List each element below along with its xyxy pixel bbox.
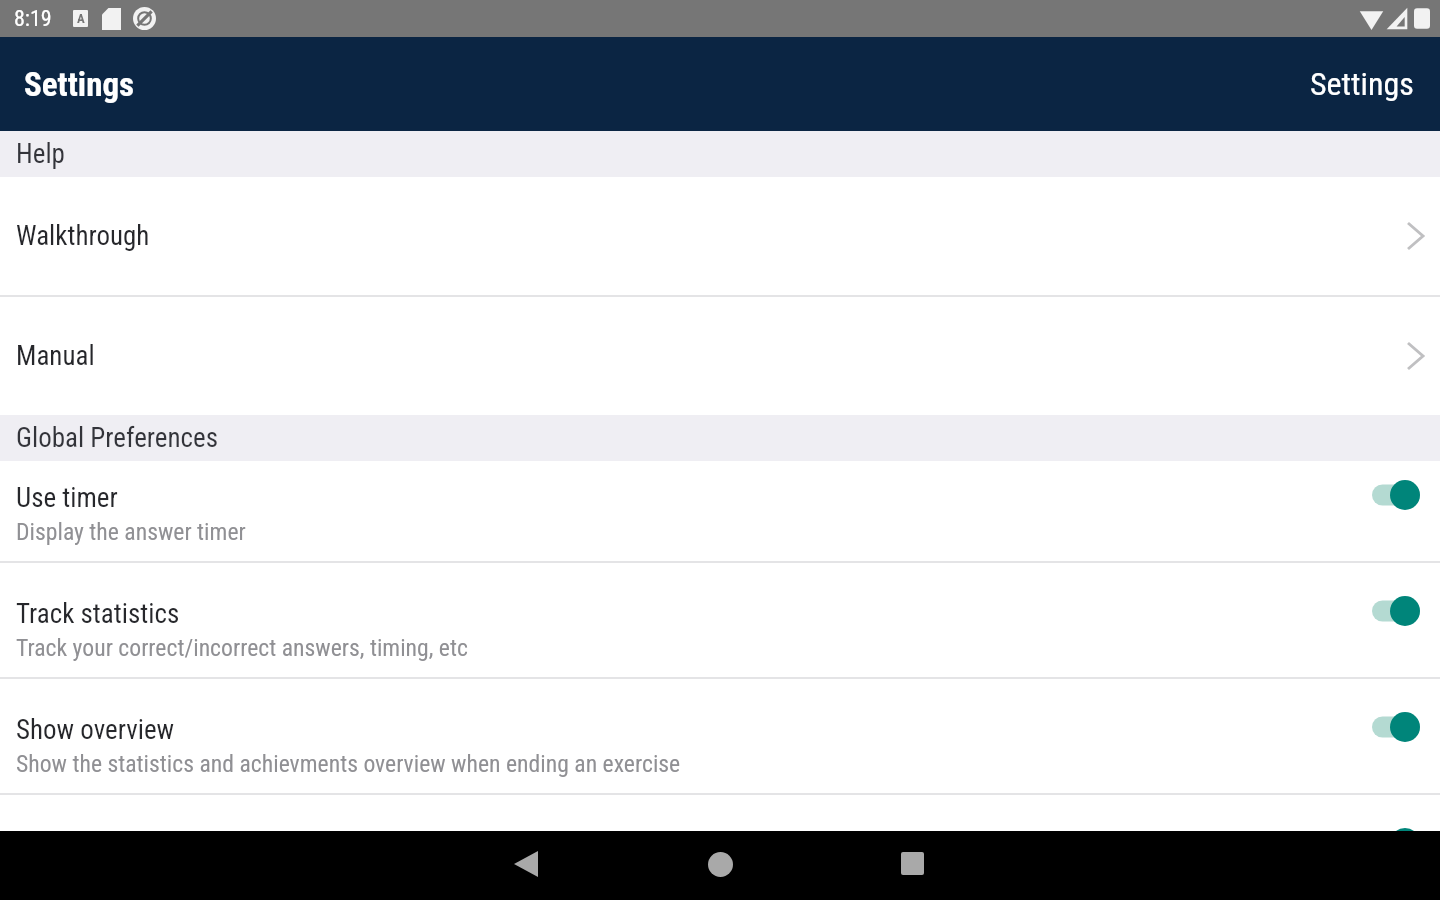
button[interactable]: Home [695,839,745,889]
staticText: Track statistics [16,598,180,630]
staticText: Track your correct/incorrect answers, ti… [16,634,468,662]
button[interactable]: Track statistics [0,563,1440,677]
staticText: Settings [24,65,134,104]
staticText: A [77,11,85,26]
staticText: Show the statistics and achievments over… [16,750,681,778]
staticText: Global Preferences [16,422,218,454]
staticText: Show overview [16,714,175,746]
staticText: Settings [1310,65,1414,103]
staticText: Use timer [16,482,118,514]
staticText: Walkthrough [16,220,1408,252]
staticText: Display the answer timer [16,518,246,546]
other: Open Walkthrough [1408,223,1423,249]
button[interactable]: Show overview [0,679,1440,793]
button[interactable]: Toggle setting [1372,827,1420,831]
button[interactable]: Walkthrough [0,177,1440,295]
button[interactable]: Toggle setting [1372,595,1420,627]
button[interactable]: Settings [1284,45,1440,123]
button[interactable]: Toggle setting [0,795,1440,831]
button[interactable]: Manual [0,297,1440,415]
staticText: 8:19 [14,6,52,32]
button[interactable]: Toggle setting [1372,479,1420,511]
staticText: Help [16,138,65,170]
other: Open Manual [1408,343,1423,369]
button[interactable]: Toggle setting [1372,711,1420,743]
staticText: Manual [16,340,1408,372]
button[interactable]: Back [501,839,551,889]
button[interactable]: Recent apps [887,838,937,888]
button[interactable]: Use timer [0,461,1440,561]
